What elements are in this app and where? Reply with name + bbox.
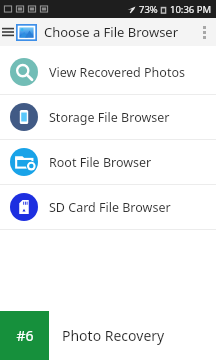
button[interactable]: Open navigation drawer — [0, 18, 16, 46]
staticText: Photo Recovery — [62, 326, 165, 345]
staticText: Storage File Browser — [49, 109, 170, 126]
button[interactable]: SD Card File Browser — [0, 185, 216, 229]
button[interactable]: More options — [192, 18, 216, 46]
staticText: 73% — [139, 3, 158, 16]
staticText: Root File Browser — [49, 154, 152, 171]
staticText: 10:36 PM — [170, 3, 212, 16]
other: App logo — [16, 24, 37, 41]
staticText: View Recovered Photos — [49, 64, 185, 81]
staticText: Choose a File Browser — [44, 23, 192, 41]
staticText: SD Card File Browser — [49, 199, 171, 216]
button[interactable]: View Recovered Photos — [0, 50, 216, 94]
button[interactable]: Storage File Browser — [0, 95, 216, 139]
staticText: #6 — [16, 326, 34, 345]
button[interactable]: #6 — [0, 311, 216, 360]
button[interactable]: Root File Browser — [0, 140, 216, 184]
